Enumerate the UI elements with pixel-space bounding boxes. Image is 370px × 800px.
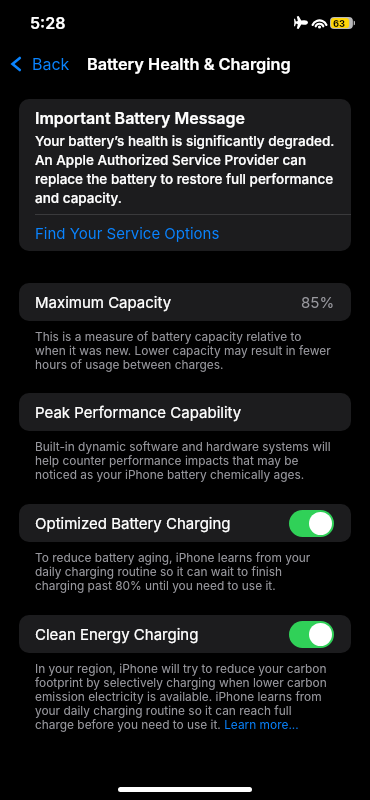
button[interactable]: Back [0, 54, 78, 73]
staticText: Clean Energy Charging [35, 625, 199, 643]
staticText: 85% [301, 293, 335, 311]
staticText: Built-in dynamic software and hardware s… [35, 439, 331, 481]
staticText: Peak Performance Capability [35, 403, 242, 421]
other: Airplane mode [294, 16, 308, 29]
button[interactable]: Find Your Service Options [19, 215, 351, 251]
staticText: In your region, iPhone will try to reduc… [35, 661, 327, 731]
button[interactable]: Toggle, on [289, 621, 334, 648]
staticText: Back [32, 54, 70, 73]
other: Battery 63 percent, Low Power Mode [330, 17, 355, 29]
button[interactable]: Maximum Capacity [19, 283, 351, 321]
button[interactable]: Peak Performance Capability [19, 393, 351, 431]
staticText: This is a measure of battery capacity re… [35, 329, 331, 371]
staticText: Optimized Battery Charging [35, 514, 231, 532]
staticText: Battery Health & Charging [87, 54, 291, 74]
staticText: To reduce battery aging, iPhone learns f… [35, 550, 311, 592]
staticText: Important Battery Message [35, 108, 245, 127]
button[interactable]: Optimized Battery Charging [19, 504, 351, 542]
staticText: 5:28 [30, 13, 66, 32]
button[interactable]: Clean Energy Charging [19, 615, 351, 653]
staticText: 63 [333, 18, 346, 29]
staticText: Find Your Service Options [35, 224, 220, 242]
staticText: Maximum Capacity [35, 293, 172, 311]
button[interactable]: Toggle, on [289, 510, 334, 537]
other: Wi-Fi [312, 17, 327, 28]
staticText: Your battery’s health is significantly d… [35, 131, 335, 207]
other: Back [11, 57, 21, 71]
